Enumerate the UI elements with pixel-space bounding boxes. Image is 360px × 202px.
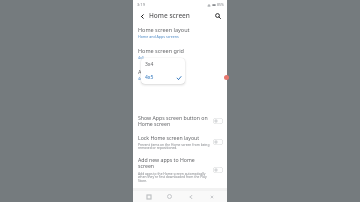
button[interactable]: Show Apps screen button on Home screen [133, 111, 227, 131]
button[interactable]: Apps screen grid [133, 64, 227, 85]
staticText: 3x4 [145, 61, 154, 68]
button[interactable]: Add new apps to Home screen [133, 153, 227, 186]
button[interactable]: Lock Home screen layout [133, 131, 227, 153]
button[interactable]: Toggle [213, 118, 223, 124]
button[interactable]: Home [164, 191, 175, 202]
staticText: 4x5 [138, 55, 145, 60]
staticText: 3:19 [137, 2, 145, 7]
staticText: Show Apps screen button on Home screen [138, 114, 210, 128]
button[interactable]: Home screen layout [133, 22, 227, 43]
staticText: 4x5 [138, 76, 145, 81]
staticText: 4x5 [145, 74, 154, 81]
staticText: Home and Apps screens [138, 34, 179, 39]
button[interactable]: Keyboard [206, 191, 217, 202]
staticText: Add new apps to Home screen [138, 156, 210, 170]
staticText: 85% [217, 2, 224, 7]
button[interactable]: Recents [143, 191, 154, 202]
staticText: Lock Home screen layout [138, 134, 200, 141]
button[interactable]: Toggle [213, 139, 223, 145]
staticText: Home screen grid [138, 47, 185, 54]
button[interactable]: Search [213, 11, 223, 21]
button[interactable]: Home screen grid [133, 43, 227, 64]
staticText: Prevent items on the Home screen from be… [138, 142, 210, 150]
button[interactable]: 4x5 [141, 71, 185, 84]
staticText: Apps screen grid [138, 68, 182, 75]
button[interactable]: Toggle [213, 167, 223, 173]
staticText: Home screen layout [138, 26, 190, 33]
button[interactable]: Back [185, 191, 196, 202]
button[interactable]: Back [137, 11, 147, 21]
button[interactable]: 3x4 [141, 58, 185, 71]
staticText: Home screen [149, 11, 190, 20]
staticText: Add apps to the Home screen automaticall… [138, 171, 210, 183]
